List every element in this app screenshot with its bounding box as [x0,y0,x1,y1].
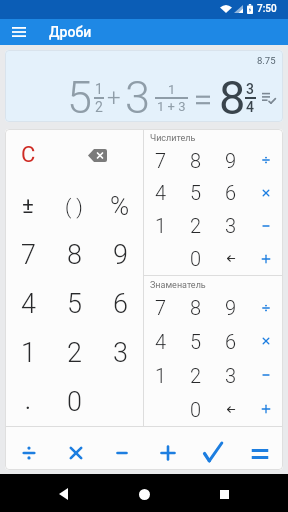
button[interactable]: % [97,182,143,230]
button[interactable]: 6 [97,279,143,328]
button[interactable]: 1 [5,328,51,377]
staticText: 9 [225,149,237,172]
staticText: 8 [190,296,202,319]
staticText: 5 [67,288,82,320]
staticText: 7:50 [257,3,277,15]
button[interactable]: 0 [51,377,97,426]
button[interactable]: 5 [51,279,97,328]
staticText: 3 [246,81,254,97]
staticText: 4 [21,288,36,320]
button[interactable]: 7 [144,291,178,324]
button[interactable]: C [5,131,51,179]
button[interactable]: 9 [213,144,248,176]
button[interactable]: 4 [144,176,178,209]
staticText: 6 [225,181,237,204]
staticText: 1 [155,214,167,237]
staticText: 7 [155,296,167,319]
button[interactable] [262,92,276,104]
button[interactable]: 0 [178,242,213,275]
staticText: 1 [95,81,103,97]
button[interactable] [200,474,248,512]
staticText: 2 [190,364,202,387]
staticText: 1 + 3 [157,99,186,114]
button[interactable]: 8 [178,144,213,176]
staticText: Дроби [49,24,92,40]
staticText: 3 [113,337,128,369]
button[interactable] [237,427,283,470]
button[interactable]: ± [5,182,51,230]
button[interactable] [99,427,145,470]
button[interactable]: . [5,377,51,426]
button[interactable] [52,427,99,470]
button[interactable] [248,324,283,358]
button[interactable] [248,291,283,324]
staticText: 6 [113,288,128,320]
staticText: 2 [95,99,103,115]
staticText: 1 [155,364,167,387]
button[interactable] [213,392,248,426]
staticText: 1 [168,82,176,97]
button[interactable]: 5 [178,176,213,209]
staticText: 1 [21,337,36,369]
button[interactable] [145,427,191,470]
button[interactable]: 8 [51,230,97,279]
staticText: 8 [190,149,202,172]
button[interactable]: 4 [144,324,178,358]
staticText: + [107,84,121,112]
button[interactable]: 2 [178,209,213,242]
button[interactable] [248,392,283,426]
staticText: 4 [246,99,254,115]
staticText: 6 [225,330,237,353]
staticText: C [21,142,36,168]
button[interactable]: ( ) [51,182,97,230]
staticText: . [25,389,31,415]
button[interactable]: 1 [144,209,178,242]
button[interactable]: 6 [213,176,248,209]
staticText: 9 [113,239,128,271]
button[interactable]: 2 [51,328,97,377]
button[interactable] [248,176,283,209]
staticText: 8.75 [257,55,276,66]
staticText: 0 [67,386,82,418]
button[interactable]: 1 [144,358,178,392]
staticText: 4 [155,330,167,353]
staticText: 5 [190,181,202,204]
button[interactable] [51,131,143,179]
button[interactable]: 0 [178,392,213,426]
button[interactable] [39,474,87,512]
button[interactable]: 7 [144,144,178,176]
button[interactable]: 9 [213,291,248,324]
button[interactable] [5,427,52,470]
button[interactable] [248,358,283,392]
button[interactable]: 2 [178,358,213,392]
button[interactable]: 3 [213,358,248,392]
button[interactable]: 9 [97,230,143,279]
staticText: % [110,191,130,221]
button[interactable]: 3 [97,328,143,377]
button[interactable]: 3 [213,209,248,242]
button[interactable] [213,242,248,275]
button[interactable]: 6 [213,324,248,358]
staticText: 9 [225,296,237,319]
staticText: 0 [190,247,202,270]
staticText: 8 [67,239,82,271]
staticText: 5 [67,71,92,122]
button[interactable]: 7 [5,230,51,279]
button[interactable] [120,474,168,512]
button[interactable]: 5 [178,324,213,358]
staticText: 3 [125,71,150,122]
button[interactable] [248,209,283,242]
button[interactable] [8,21,30,43]
button[interactable]: 4 [5,279,51,328]
staticText: Знаменатель [150,280,206,291]
button[interactable] [248,144,283,176]
button[interactable] [248,242,283,275]
staticText: 5 [190,330,202,353]
staticText: 2 [67,337,82,369]
staticText: ( ) [65,195,83,218]
button[interactable]: 8 [178,291,213,324]
button[interactable] [191,427,237,470]
